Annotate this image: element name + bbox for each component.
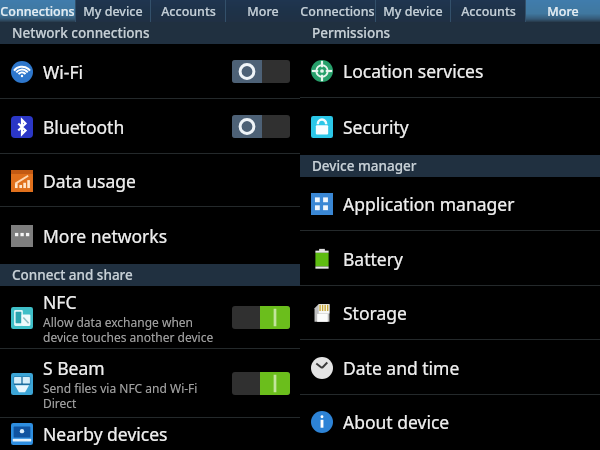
- staticText: Wi-Fi: [43, 60, 84, 84]
- staticText: Connect and share: [12, 266, 133, 284]
- button[interactable]: Off: [232, 115, 290, 138]
- button[interactable]: Date and time: [300, 340, 600, 395]
- staticText: Accounts: [161, 3, 216, 20]
- staticText: My device: [383, 3, 443, 20]
- staticText: Battery: [343, 247, 403, 271]
- button[interactable]: Bluetooth: [0, 99, 300, 154]
- staticText: About device: [343, 410, 450, 434]
- button[interactable]: Battery: [300, 231, 600, 286]
- staticText: More: [547, 3, 579, 20]
- staticText: Security: [343, 115, 409, 139]
- button[interactable]: My device: [76, 0, 150, 22]
- staticText: More: [247, 3, 279, 20]
- staticText: Application manager: [343, 192, 515, 216]
- button[interactable]: NFC: [0, 286, 300, 349]
- button[interactable]: Connections: [0, 0, 75, 22]
- staticText: Send files via NFC and Wi-Fi Direct: [43, 380, 198, 411]
- staticText: Bluetooth: [43, 115, 125, 139]
- button[interactable]: Data usage: [0, 154, 300, 207]
- button[interactable]: More: [526, 0, 600, 22]
- staticText: Accounts: [461, 3, 516, 20]
- staticText: Nearby devices: [43, 422, 168, 446]
- staticText: NFC: [43, 290, 77, 314]
- button[interactable]: Connections: [300, 0, 375, 22]
- staticText: Data usage: [43, 169, 136, 193]
- staticText: Date and time: [343, 356, 460, 380]
- button[interactable]: Off: [232, 60, 290, 83]
- button[interactable]: Security: [300, 98, 600, 155]
- button[interactable]: Nearby devices: [0, 418, 300, 450]
- staticText: Connections: [300, 3, 375, 20]
- staticText: My device: [83, 3, 143, 20]
- button[interactable]: Accounts: [151, 0, 225, 22]
- button[interactable]: S Beam: [0, 349, 300, 418]
- button[interactable]: Wi-Fi: [0, 44, 300, 99]
- staticText: Location services: [343, 59, 484, 83]
- staticText: Allow data exchange when device touches …: [43, 314, 214, 345]
- staticText: Permissions: [312, 24, 391, 42]
- button[interactable]: My device: [376, 0, 450, 22]
- button[interactable]: Storage: [300, 286, 600, 340]
- button[interactable]: More networks: [0, 207, 300, 264]
- button[interactable]: More: [226, 0, 300, 22]
- button[interactable]: Location services: [300, 44, 600, 98]
- button[interactable]: Application manager: [300, 177, 600, 231]
- button[interactable]: On: [232, 306, 290, 329]
- staticText: S Beam: [43, 356, 105, 380]
- staticText: Connections: [0, 3, 75, 20]
- button[interactable]: On: [232, 372, 290, 395]
- staticText: Storage: [343, 301, 407, 325]
- button[interactable]: About device: [300, 395, 600, 449]
- staticText: More networks: [43, 224, 168, 248]
- staticText: Device manager: [312, 157, 417, 175]
- staticText: Network connections: [12, 24, 150, 42]
- button[interactable]: Accounts: [451, 0, 525, 22]
